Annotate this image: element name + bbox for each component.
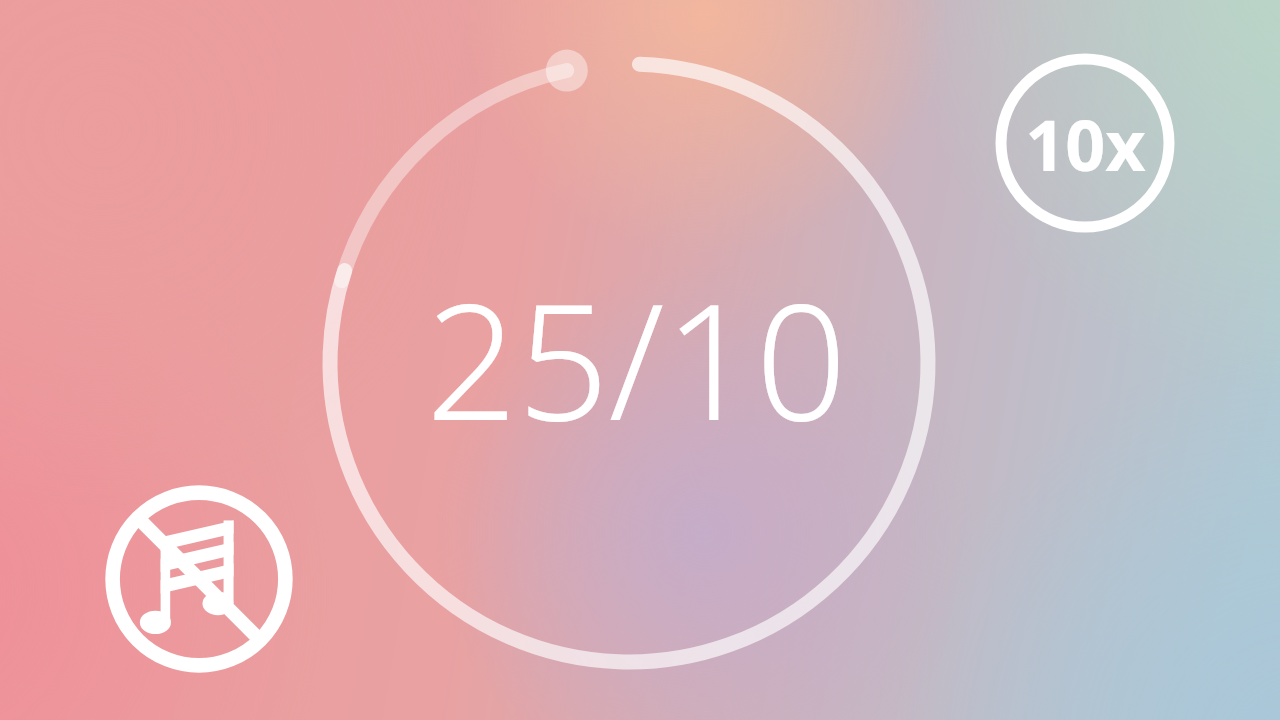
button[interactable]: 25/10 — [426, 249, 847, 467]
staticText: 10x — [1025, 96, 1146, 191]
button[interactable]: Repeat ten times — [995, 53, 1175, 233]
staticText: 25/10 — [426, 249, 847, 467]
button[interactable]: Music off — [103, 483, 295, 675]
button[interactable]: Round progress 25 of 10 — [0, 0, 1280, 720]
